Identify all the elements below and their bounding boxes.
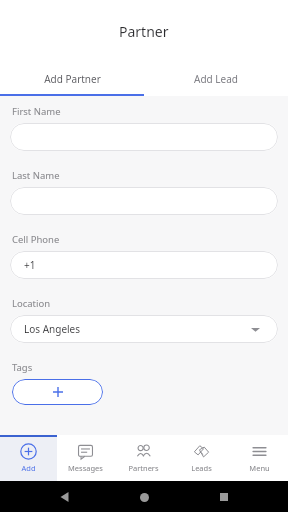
button[interactable]: Back <box>50 482 80 512</box>
staticText: Last Name <box>12 169 60 182</box>
staticText: +1 <box>24 258 36 272</box>
staticText: Add Lead <box>194 72 238 86</box>
button[interactable]: +1 <box>10 251 278 279</box>
staticText: Partners <box>128 463 159 473</box>
staticText: Add Partner <box>44 72 101 86</box>
button[interactable]: Menu <box>230 435 288 481</box>
staticText: Cell Phone <box>12 233 60 246</box>
staticText: Tags <box>12 361 33 374</box>
button[interactable]: Partners <box>114 435 172 481</box>
staticText: Menu <box>249 463 270 473</box>
staticText: First Name <box>12 105 61 118</box>
button[interactable] <box>10 187 278 215</box>
button[interactable]: Recent apps <box>209 482 239 512</box>
button[interactable]: Leads <box>172 435 230 481</box>
staticText: Leads <box>191 463 212 473</box>
button[interactable]: Messages <box>57 435 114 481</box>
button[interactable]: Add Partner <box>0 62 144 96</box>
button[interactable] <box>10 123 278 151</box>
button[interactable]: Add <box>0 435 57 481</box>
button[interactable]: Add tag <box>12 379 103 405</box>
staticText: Partner <box>119 22 169 41</box>
staticText: Messages <box>68 463 103 473</box>
staticText: Add <box>21 463 36 473</box>
button[interactable]: Add Lead <box>144 62 288 96</box>
staticText: Location <box>12 297 51 310</box>
button[interactable]: Home <box>129 482 159 512</box>
staticText: Los Angeles <box>24 322 81 336</box>
button[interactable]: Los Angeles <box>10 315 278 343</box>
